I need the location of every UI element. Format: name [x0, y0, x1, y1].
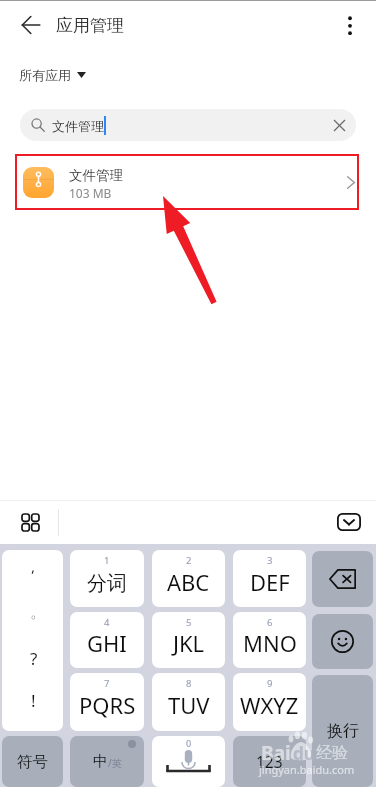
button[interactable]: 文件管理	[15, 154, 359, 210]
staticText: 7	[104, 677, 110, 690]
button[interactable]: Backspace	[312, 551, 373, 607]
other: Emoji	[331, 630, 354, 653]
staticText: 6	[267, 616, 273, 629]
staticText: 文件管理	[52, 118, 104, 134]
button[interactable]: 文件管理	[20, 109, 356, 141]
staticText: du	[293, 742, 315, 765]
button[interactable]: 2	[152, 550, 225, 607]
staticText: 1	[104, 554, 110, 567]
button[interactable]: 中	[70, 736, 144, 787]
staticText: 9	[267, 677, 273, 690]
staticText: 文件管理	[69, 167, 123, 184]
staticText: 103 MB	[69, 185, 112, 201]
staticText: ,	[31, 556, 36, 576]
staticText: 3	[267, 554, 273, 567]
button[interactable]: 换行	[312, 675, 373, 787]
other: Backspace	[329, 569, 356, 589]
button[interactable]: Back	[22, 16, 40, 34]
button[interactable]: Clear text	[327, 113, 351, 137]
staticText: WXYZ	[240, 690, 299, 720]
staticText: 所有应用	[19, 67, 71, 83]
button[interactable]: Emoji	[312, 614, 373, 669]
staticText: Bai	[261, 740, 291, 766]
staticText: JKL	[173, 628, 205, 658]
button[interactable]: 6	[233, 612, 306, 668]
button[interactable]: 9	[233, 673, 306, 731]
button[interactable]: Hide keyboard	[333, 506, 365, 538]
button[interactable]: 1	[70, 550, 144, 607]
button[interactable]: Keyboard layout	[14, 506, 46, 538]
staticText: 应用管理	[56, 15, 124, 36]
button[interactable]: 3	[233, 550, 306, 607]
staticText: 8	[186, 677, 192, 690]
button[interactable]: Space	[152, 736, 225, 787]
staticText: /英	[108, 756, 122, 770]
staticText: jingyan.baidu.com	[259, 762, 355, 777]
staticText: 换行	[327, 721, 359, 741]
button[interactable]: ,	[2, 550, 63, 731]
staticText: 分词	[87, 571, 127, 596]
staticText: 123	[256, 751, 283, 772]
staticText: ?	[30, 647, 38, 670]
staticText: TUV	[168, 690, 210, 720]
button[interactable]: 符号	[2, 736, 63, 787]
staticText: MNO	[243, 628, 297, 658]
staticText: 5	[186, 616, 192, 629]
staticText: PQRS	[79, 690, 136, 720]
staticText: ABC	[167, 567, 210, 597]
button[interactable]: 5	[152, 612, 225, 668]
staticText: 4	[104, 616, 110, 629]
button[interactable]: 所有应用	[19, 61, 86, 89]
staticText: !	[31, 689, 36, 712]
button[interactable]: 7	[70, 673, 144, 731]
button[interactable]: More options	[334, 9, 366, 41]
staticText: ◦	[30, 611, 38, 625]
button[interactable]: 4	[70, 612, 144, 668]
staticText: 经验	[316, 743, 348, 763]
staticText: 0	[186, 737, 192, 749]
staticText: 2	[186, 554, 192, 567]
button[interactable]: 123	[233, 736, 306, 787]
staticText: 中	[93, 752, 108, 771]
staticText: GHI	[87, 628, 127, 658]
staticText: DEF	[250, 567, 290, 597]
button[interactable]: 8	[152, 673, 225, 731]
staticText: 符号	[17, 752, 48, 772]
